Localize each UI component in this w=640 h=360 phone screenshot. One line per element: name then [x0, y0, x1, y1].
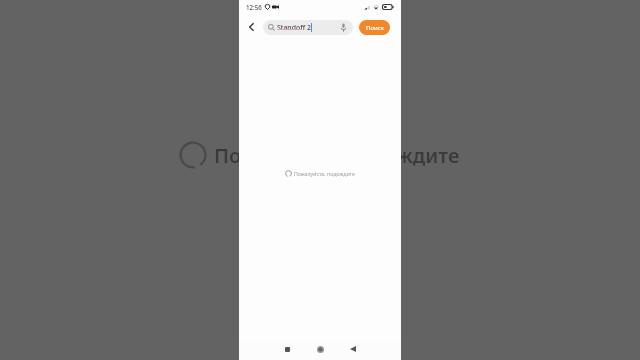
staticText: Пожалуйста, подождите: [294, 170, 355, 177]
button[interactable]: Поиск: [359, 20, 390, 35]
staticText: Поиск: [366, 24, 384, 32]
staticText: Пожалуйста, подождите: [214, 142, 460, 169]
button[interactable]: Home: [310, 339, 330, 359]
button[interactable]: Back: [239, 18, 263, 36]
button[interactable]: Standoff 2: [263, 20, 353, 35]
button[interactable]: Recent apps: [277, 339, 297, 359]
staticText: 12:56: [246, 3, 262, 11]
button[interactable]: Back: [343, 339, 363, 359]
button[interactable]: Voice search: [338, 20, 349, 35]
staticText: Standoff 2: [277, 23, 311, 32]
